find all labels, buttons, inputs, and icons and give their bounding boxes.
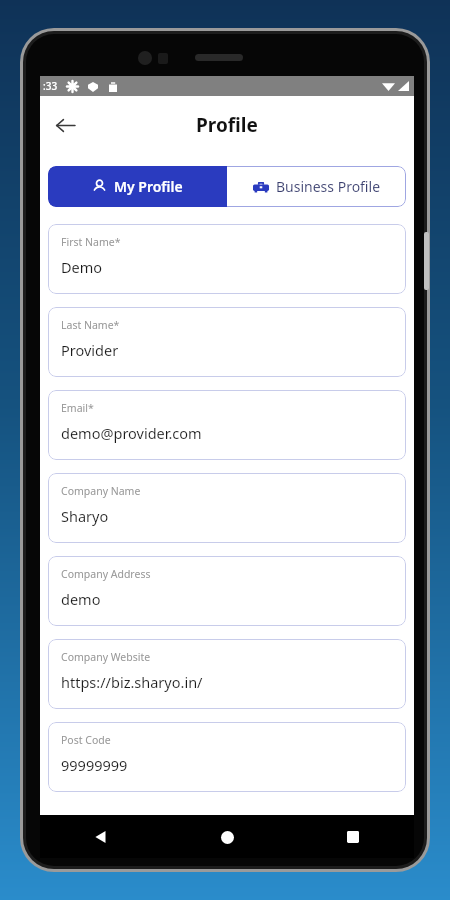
staticText: :33 [43,79,58,93]
staticText: Company Address [61,567,151,581]
staticText: Business Profile [276,177,381,196]
staticText: First Name* [61,235,121,249]
staticText: demo [61,589,101,609]
button[interactable]: My Profile [48,166,227,207]
staticText: Post Code [61,733,111,747]
button[interactable]: Post Code [48,722,406,792]
button[interactable]: Back [48,108,82,142]
staticText: Company Website [61,650,151,664]
button[interactable]: Business Profile [227,166,406,207]
button[interactable]: Company Name [48,473,406,543]
staticText: 99999999 [61,755,128,775]
staticText: My Profile [114,177,183,196]
staticText: Email* [61,401,94,415]
staticText: Company Name [61,484,141,498]
button[interactable]: Email* [48,390,406,460]
staticText: Provider [61,340,119,360]
button[interactable]: Home [212,822,242,852]
staticText: Profile [196,112,258,138]
button[interactable]: Company Address [48,556,406,626]
button[interactable]: First Name* [48,224,406,294]
button[interactable]: Recent apps [338,822,368,852]
button[interactable]: Last Name* [48,307,406,377]
staticText: https://biz.sharyo.in/ [61,672,203,692]
staticText: Demo [61,257,103,277]
staticText: Sharyo [61,506,109,526]
button[interactable]: Back [86,822,116,852]
staticText: demo@provider.com [61,423,202,443]
staticText: Last Name* [61,318,120,332]
button[interactable]: Company Website [48,639,406,709]
